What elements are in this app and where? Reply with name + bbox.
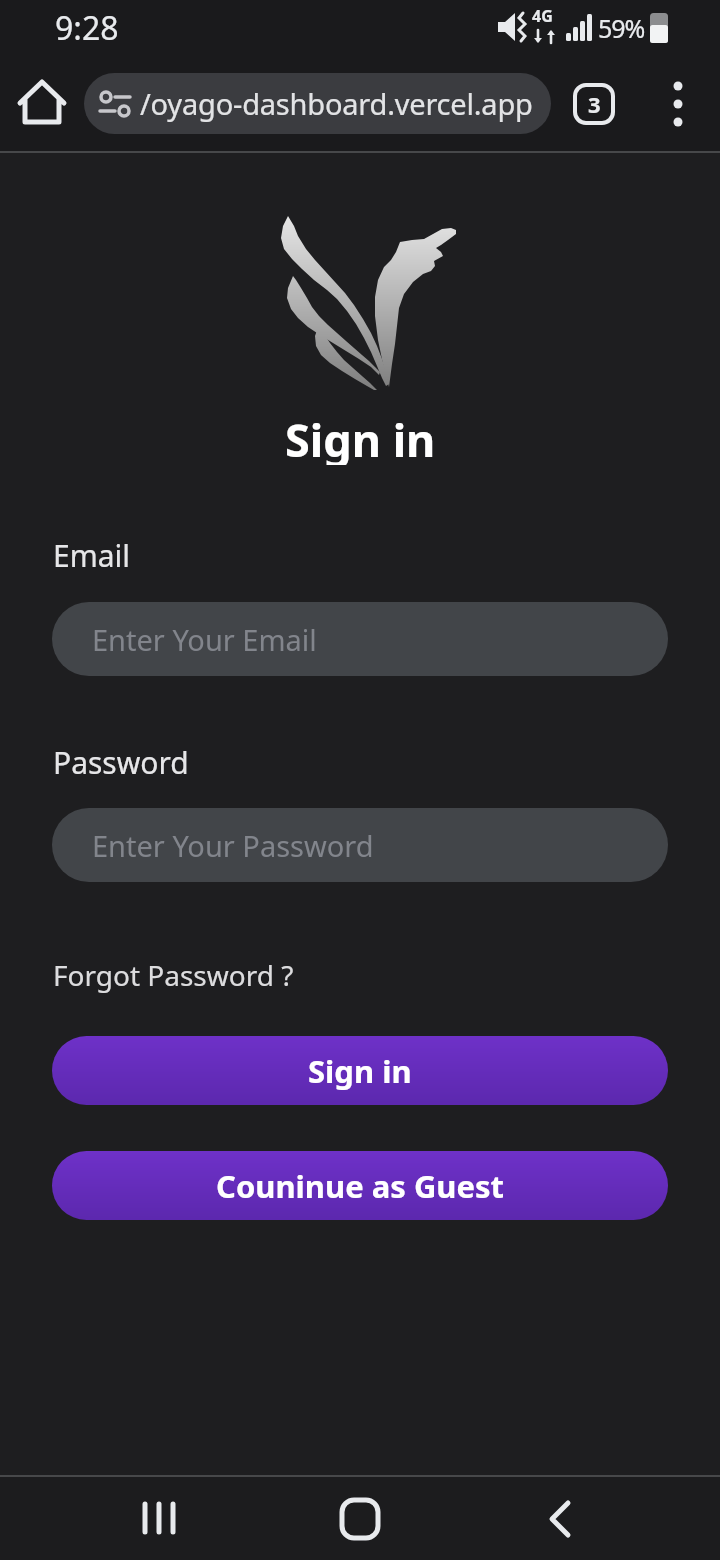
button[interactable]	[320, 1479, 400, 1559]
button[interactable]: Sign in	[52, 1036, 668, 1105]
button[interactable]: Forgot Password ?	[53, 955, 294, 995]
button[interactable]: 3	[566, 76, 622, 132]
staticText: Sign in	[285, 409, 436, 465]
staticText: Password	[53, 742, 189, 782]
staticText: Enter Your Email	[92, 620, 317, 659]
button[interactable]	[119, 1479, 199, 1559]
button[interactable]: /oyago-dashboard.vercel.app	[84, 73, 551, 134]
staticText: Sign in	[308, 1050, 412, 1092]
button[interactable]	[652, 76, 704, 132]
button[interactable]: Couninue as Guest	[52, 1151, 668, 1220]
staticText: 3	[588, 89, 601, 119]
staticText: Couninue as Guest	[216, 1165, 505, 1207]
staticText: Enter Your Password	[92, 826, 374, 865]
staticText: /oyago-dashboard.vercel.app	[140, 84, 533, 123]
staticText: Email	[53, 535, 131, 575]
staticText: Forgot Password ?	[53, 956, 294, 994]
staticText: 59%	[598, 11, 645, 45]
button[interactable]: Enter Your Email	[52, 602, 668, 676]
button[interactable]	[12, 76, 72, 132]
button[interactable]: Enter Your Password	[52, 808, 668, 882]
staticText: 4G	[532, 5, 553, 27]
button[interactable]	[520, 1479, 600, 1559]
staticText: 9:28	[55, 6, 119, 50]
